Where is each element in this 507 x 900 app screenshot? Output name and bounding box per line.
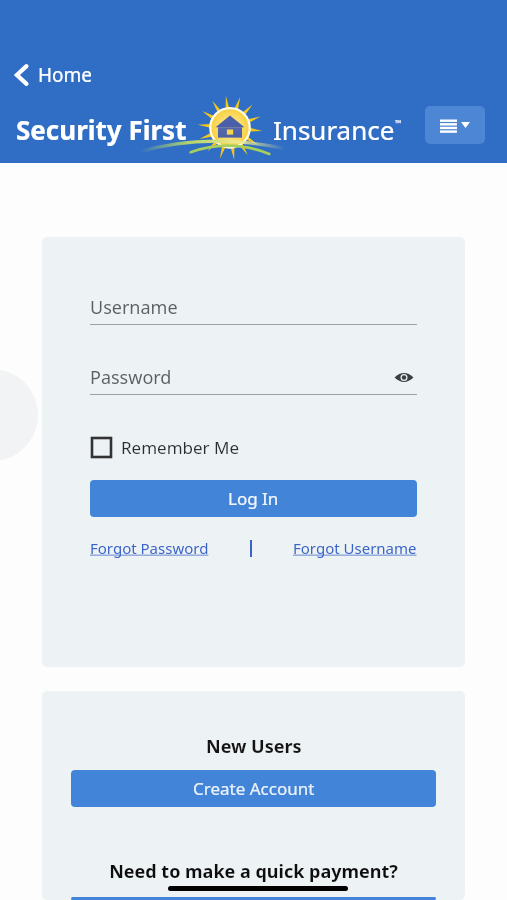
staticText: Remember Me: [121, 436, 240, 459]
button[interactable]: Forgot Password: [88, 536, 211, 560]
button[interactable]: Menu: [425, 106, 485, 144]
staticText: Password: [90, 365, 172, 390]
button[interactable]: Remember Me: [90, 433, 242, 462]
button[interactable]: Show password: [391, 364, 417, 390]
staticText: Forgot Username: [293, 538, 417, 558]
staticText: New Users: [206, 734, 302, 759]
button[interactable]: Log In: [90, 480, 417, 517]
staticText: Log In: [228, 487, 279, 510]
staticText: ™: [395, 117, 402, 128]
staticText: Create Account: [193, 777, 315, 800]
button[interactable]: Forgot Username: [291, 536, 419, 560]
staticText: Insurance: [273, 112, 395, 147]
staticText: Username: [90, 295, 178, 320]
button[interactable]: Create Account: [71, 770, 436, 807]
staticText: Home: [38, 62, 93, 88]
staticText: Need to make a quick payment?: [109, 859, 398, 884]
staticText: Security First: [16, 112, 187, 147]
staticText: Forgot Password: [90, 538, 209, 558]
button[interactable]: [71, 897, 436, 900]
button[interactable]: Home: [8, 58, 99, 92]
